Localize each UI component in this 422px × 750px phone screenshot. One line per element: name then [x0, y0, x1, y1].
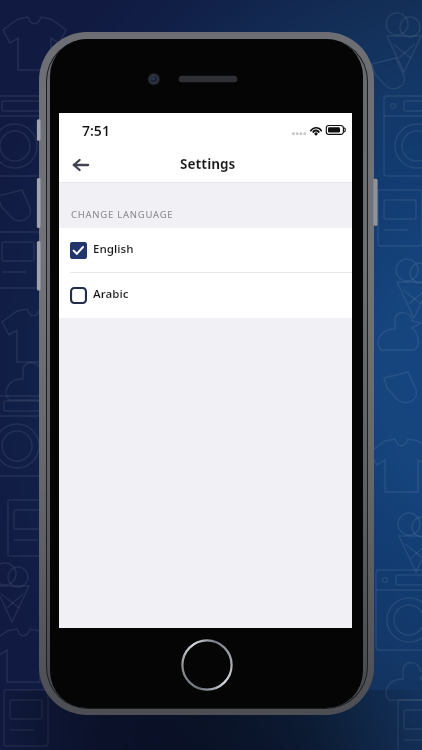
- staticText: 7:51: [82, 121, 110, 140]
- button[interactable]: English: [59, 228, 352, 272]
- staticText: English: [93, 241, 134, 257]
- button[interactable]: Arabic: [59, 273, 352, 318]
- button[interactable]: Back: [63, 147, 99, 183]
- staticText: Arabic: [93, 286, 129, 302]
- staticText: Settings: [180, 155, 236, 173]
- staticText: CHANGE LANGUAGE: [71, 208, 174, 221]
